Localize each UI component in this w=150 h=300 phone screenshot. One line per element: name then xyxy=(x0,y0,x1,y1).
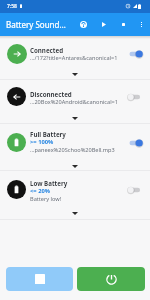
staticText: …paneex%20Schoo%20Bell.mp3 xyxy=(30,146,115,154)
button[interactable]: Power xyxy=(77,267,145,291)
button[interactable]: Disabled xyxy=(127,91,144,103)
button[interactable]: Play xyxy=(94,13,113,36)
staticText: Disconnected xyxy=(30,90,72,98)
staticText: <= 20% xyxy=(30,187,50,195)
staticText: …20Box%20Android&canonical=1 xyxy=(30,98,119,106)
staticText: Battery low! xyxy=(30,195,62,203)
staticText: Full Battery xyxy=(30,130,66,138)
staticText: >= 100% xyxy=(30,138,54,146)
button[interactable]: Enabled xyxy=(127,137,144,149)
button[interactable]: Disabled xyxy=(127,184,144,196)
staticText: Low Battery xyxy=(30,179,68,187)
button[interactable]: Stop xyxy=(6,267,73,291)
staticText: …/172?title=Antares&canonical=1 xyxy=(30,54,118,62)
staticText: Battery Sound… xyxy=(6,19,66,30)
staticText: Connected xyxy=(30,46,64,54)
button[interactable]: More options xyxy=(133,13,149,36)
button[interactable]: Stop xyxy=(114,13,133,36)
button[interactable]: Disconnected xyxy=(0,80,150,124)
button[interactable]: Low Battery xyxy=(0,170,150,220)
button[interactable]: Help xyxy=(74,13,93,36)
button[interactable]: Enabled xyxy=(127,48,144,60)
button[interactable]: Connected xyxy=(0,39,150,80)
button[interactable]: Full Battery xyxy=(0,124,150,171)
staticText: 7:58 xyxy=(7,3,17,10)
